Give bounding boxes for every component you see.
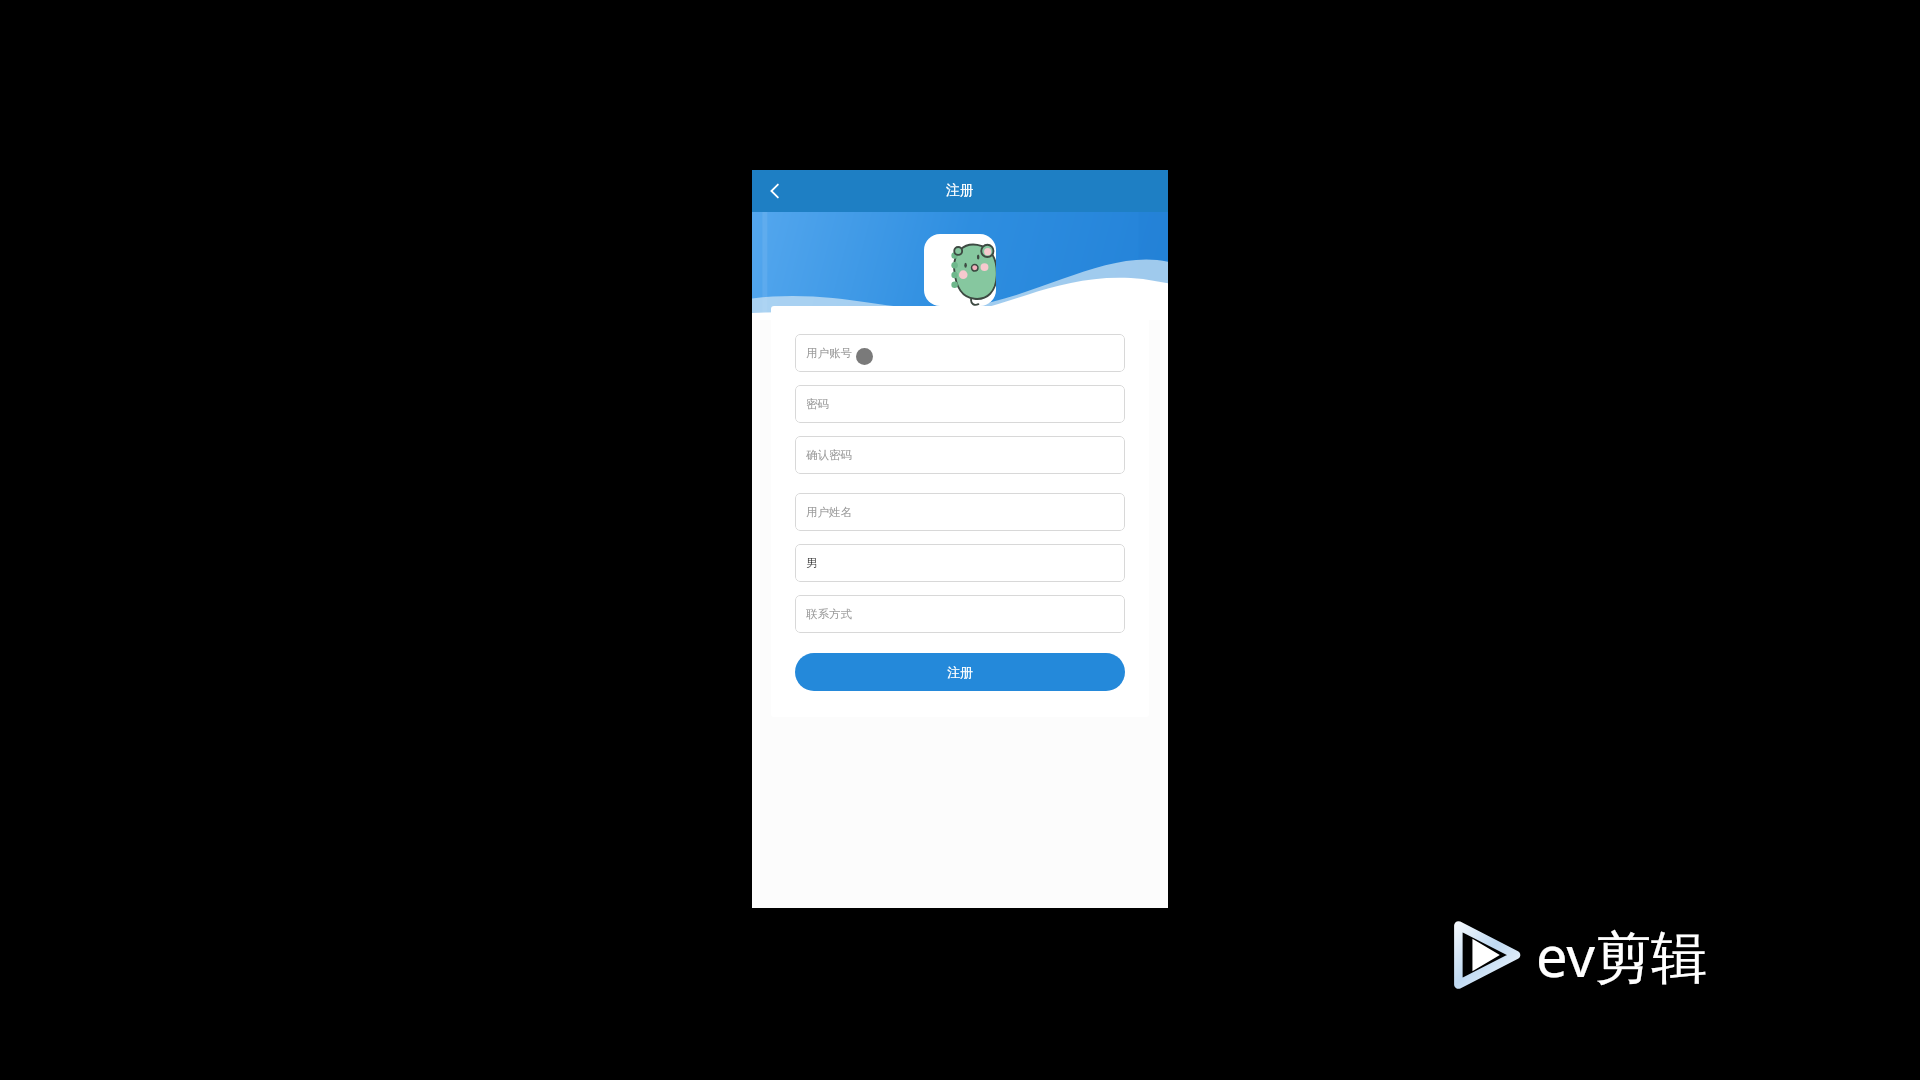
button[interactable]: 联系方式: [795, 595, 1125, 633]
staticText: 确认密码: [806, 448, 852, 462]
button[interactable]: 密码: [795, 385, 1125, 423]
staticText: 注册: [947, 664, 973, 680]
staticText: 联系方式: [806, 607, 852, 621]
staticText: 用户姓名: [806, 505, 852, 519]
button[interactable]: Avatar: [924, 234, 996, 306]
staticText: 男: [806, 556, 818, 570]
staticText: ev剪辑: [1536, 917, 1707, 993]
button[interactable]: Back: [752, 170, 798, 212]
button[interactable]: 确认密码: [795, 436, 1125, 474]
button[interactable]: 男: [795, 544, 1125, 582]
staticText: 用户账号: [806, 346, 852, 360]
button[interactable]: 用户姓名: [795, 493, 1125, 531]
staticText: 密码: [806, 397, 829, 411]
button[interactable]: 用户账号: [795, 334, 1125, 372]
staticText: 注册: [946, 182, 974, 200]
button[interactable]: 注册: [795, 653, 1125, 691]
